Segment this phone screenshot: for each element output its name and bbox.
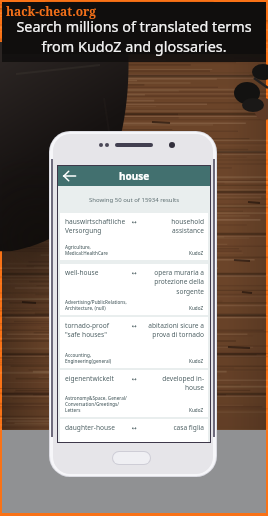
staticText: Agriculture, Medical:HealthCare <box>65 244 108 256</box>
staticText: Showing 50 out of 15934 results <box>89 196 180 204</box>
staticText: hauswirtschaftliche Versorgung <box>65 217 126 235</box>
staticText: tornado-proof "safe houses" <box>65 321 109 339</box>
staticText: from KudoZ and glossaries. <box>41 37 227 57</box>
staticText: household assistance <box>171 217 204 235</box>
staticText: casa figlia <box>173 423 204 432</box>
staticText: Search millions of translated terms <box>16 17 252 37</box>
staticText: KudoZ <box>189 305 204 311</box>
button[interactable]: well-house <box>60 264 208 315</box>
staticText: house <box>119 169 150 183</box>
staticText: KudoZ <box>189 250 204 256</box>
staticText: eigenentwickelt <box>65 374 114 383</box>
staticText: Advertising/PublicRelations, Architectur… <box>65 299 127 311</box>
staticText: daughter-house <box>65 423 115 432</box>
staticText: developed in- house <box>162 374 204 392</box>
staticText: ↔ <box>129 322 139 329</box>
staticText: hack-cheat.org <box>6 3 97 19</box>
staticText: ↔ <box>129 375 139 382</box>
staticText: Astronomy&Space, General/ Conversation/G… <box>65 395 127 413</box>
staticText: KudoZ <box>189 358 204 364</box>
staticText: KudoZ <box>189 407 204 413</box>
button[interactable]: daughter-house <box>60 419 208 442</box>
button[interactable]: hauswirtschaftliche Versorgung <box>60 213 208 260</box>
staticText: Accounting, Engineering(general) <box>65 352 112 364</box>
button[interactable]: Back <box>62 169 76 183</box>
button[interactable]: eigenentwickelt <box>60 370 208 417</box>
button[interactable]: tornado-proof "safe houses" <box>60 317 208 368</box>
staticText: well-house <box>65 268 99 277</box>
staticText: abitazioni sicure a prova di tornado <box>148 321 204 339</box>
button[interactable]: Home <box>112 451 151 465</box>
staticText: ↔ <box>129 424 139 431</box>
staticText: opera muraria a protezione della sorgent… <box>154 268 204 296</box>
staticText: ↔ <box>129 269 139 276</box>
staticText: ↔ <box>129 218 139 225</box>
